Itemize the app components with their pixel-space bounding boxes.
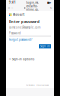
staticText: login.microsoftonline.com [26,1,39,15]
staticText: 9:41 [9,1,16,4]
staticText: ᐳ [11,6,13,9]
staticText: someone@example.com [9,26,40,29]
staticText: ▮▮▰ [47,1,51,4]
staticText: ⚿ [9,58,11,60]
staticText: ↻ [50,6,52,9]
staticText: Password [9,31,21,35]
staticText: Enter password [9,19,40,24]
staticText: Sign-in options [12,57,34,61]
staticText: ᐸ [8,6,10,9]
staticText: Forgot password? [9,38,32,41]
button[interactable]: Forgot password? [9,38,32,41]
button[interactable]: Sign in [39,44,51,48]
staticText: Microsoft [12,13,24,16]
staticText: Sign in [40,44,50,48]
staticText: Privacy & cookies [36,84,49,86]
button[interactable]: ⚿ [9,57,34,61]
staticText: Terms of use [26,84,35,86]
